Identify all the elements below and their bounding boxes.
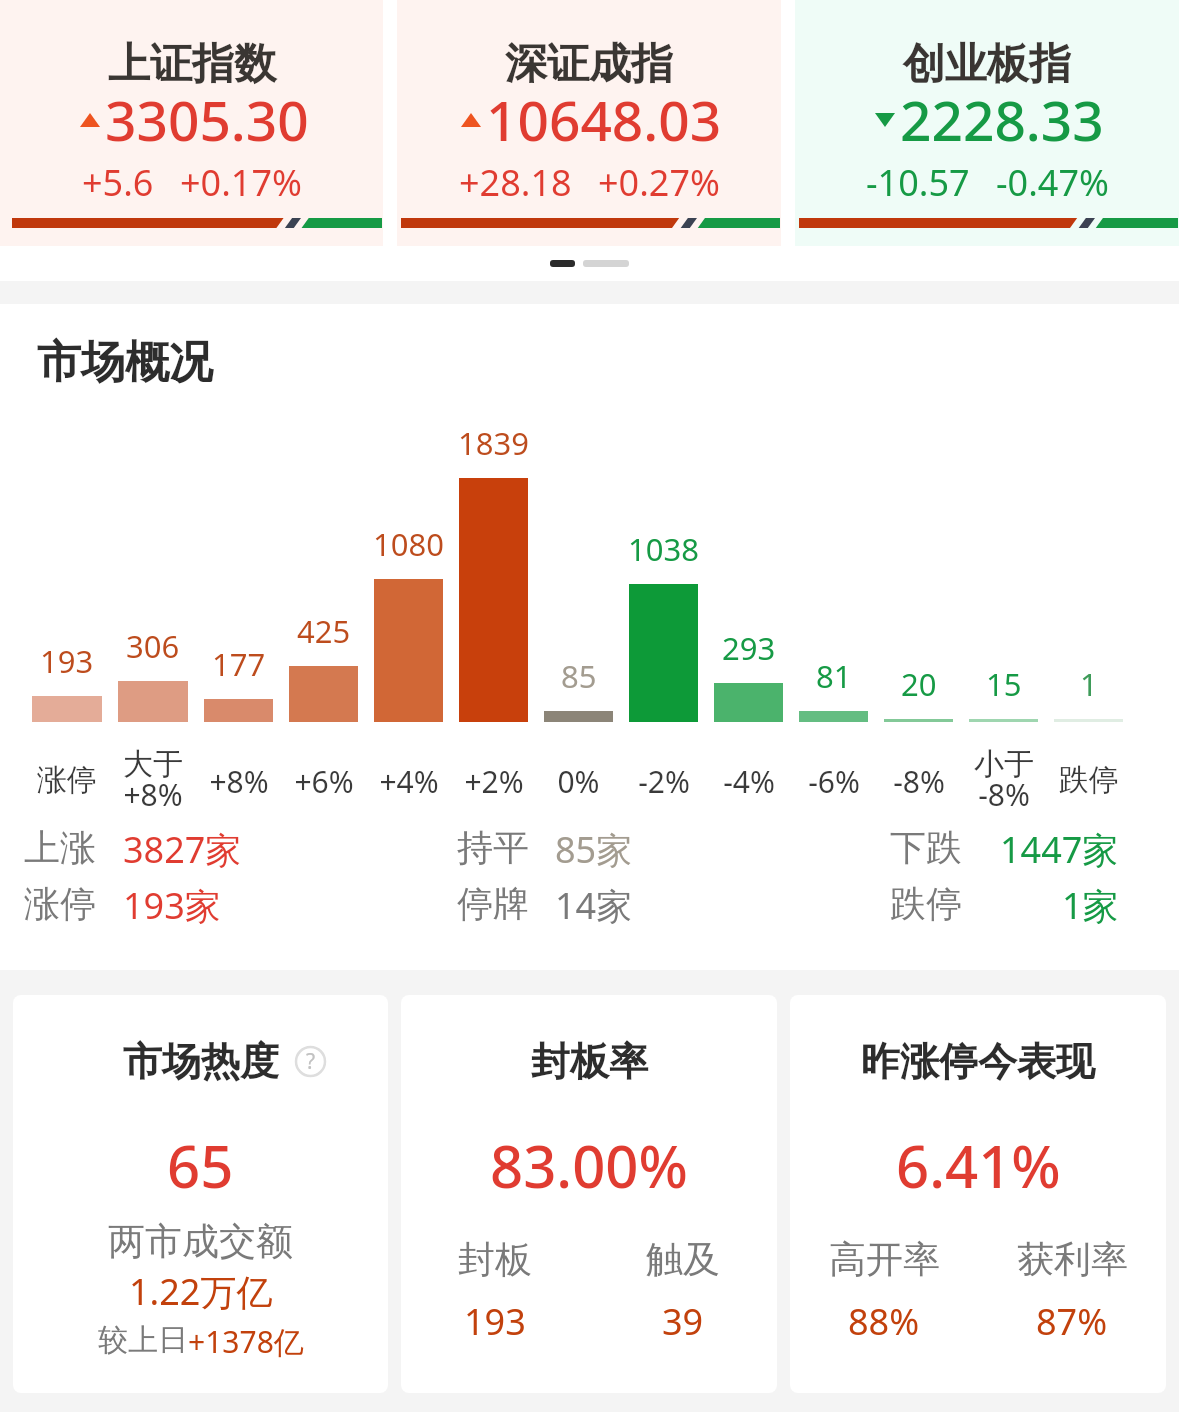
staticText: 1: [1080, 663, 1098, 705]
staticText: 85家: [555, 825, 633, 874]
staticText: 封板率: [531, 1037, 648, 1086]
staticText: +6%: [294, 761, 354, 802]
staticText: -4%: [723, 761, 775, 802]
staticText: 81: [816, 655, 852, 697]
staticText: 高开率: [829, 1236, 940, 1283]
staticText: 193家: [123, 881, 221, 930]
staticText: 停牌: [457, 881, 529, 926]
staticText: 下跌: [890, 825, 962, 870]
staticText: 触及: [646, 1236, 720, 1283]
button[interactable]: 封板率: [401, 995, 777, 1393]
staticText: 1038: [628, 528, 699, 570]
staticText: 跌停: [890, 881, 962, 926]
staticText: 14家: [555, 881, 633, 930]
staticText: +0.27%: [598, 158, 720, 207]
staticText: -8%: [978, 774, 1030, 815]
staticText: 上涨: [24, 825, 96, 870]
staticText: 涨停: [37, 761, 97, 799]
staticText: 87%: [1036, 1297, 1108, 1346]
staticText: 88%: [848, 1297, 920, 1346]
staticText: 39: [662, 1297, 704, 1346]
staticText: 20: [901, 663, 937, 705]
staticText: +2%: [464, 761, 524, 802]
staticText: 获利率: [1017, 1236, 1128, 1283]
staticText: 193: [40, 640, 94, 682]
button[interactable]: 昨涨停今表现: [790, 995, 1166, 1393]
staticText: 涨停: [24, 881, 96, 926]
staticText: 0%: [557, 761, 600, 802]
staticText: 85: [561, 655, 597, 697]
staticText: +8%: [209, 761, 269, 802]
staticText: 6.41%: [896, 1126, 1061, 1205]
staticText: 两市成交额: [108, 1218, 293, 1265]
staticText: 较上日: [98, 1321, 188, 1359]
staticText: 1447家: [1000, 825, 1119, 874]
staticText: 1080: [373, 523, 444, 565]
staticText: +1378亿: [188, 1321, 304, 1362]
staticText: ?: [306, 1047, 316, 1076]
staticText: 昨涨停今表现: [861, 1037, 1095, 1086]
staticText: 306: [126, 625, 180, 667]
staticText: +5.6: [82, 158, 154, 207]
staticText: 177: [212, 643, 266, 685]
staticText: -2%: [638, 761, 690, 802]
staticText: 1839: [458, 422, 529, 464]
staticText: 跌停: [1059, 761, 1119, 799]
staticText: +4%: [379, 761, 439, 802]
staticText: 封板: [458, 1236, 532, 1283]
staticText: 10648.03: [486, 82, 722, 157]
staticText: -10.57: [866, 158, 970, 207]
staticText: 大于: [123, 745, 183, 783]
staticText: 创业板指: [903, 38, 1071, 91]
staticText: 市场概况: [37, 335, 213, 390]
staticText: +28.18: [459, 158, 572, 207]
staticText: 1家: [1062, 881, 1119, 930]
staticText: 15: [986, 663, 1022, 705]
button[interactable]: 深证成指: [397, 0, 781, 246]
staticText: 425: [297, 610, 351, 652]
staticText: 2228.33: [900, 82, 1104, 157]
staticText: 小于: [974, 745, 1034, 783]
button[interactable]: 上证指数: [0, 0, 383, 246]
staticText: -6%: [808, 761, 860, 802]
staticText: 3827家: [123, 825, 242, 874]
staticText: 1.22万亿: [129, 1267, 273, 1316]
staticText: 83.00%: [490, 1126, 688, 1205]
button[interactable]: 创业板指: [795, 0, 1179, 246]
staticText: 293: [722, 627, 776, 669]
staticText: 65: [167, 1126, 234, 1205]
staticText: -8%: [893, 761, 945, 802]
staticText: 市场热度: [123, 1037, 279, 1086]
staticText: 上证指数: [108, 38, 276, 91]
staticText: 193: [464, 1297, 526, 1346]
staticText: -0.47%: [996, 158, 1109, 207]
staticText: 深证成指: [505, 38, 673, 91]
staticText: 持平: [457, 825, 529, 870]
staticText: +0.17%: [180, 158, 302, 207]
staticText: +8%: [123, 774, 183, 815]
button[interactable]: 市场热度: [13, 995, 388, 1393]
staticText: 3305.30: [105, 82, 309, 157]
